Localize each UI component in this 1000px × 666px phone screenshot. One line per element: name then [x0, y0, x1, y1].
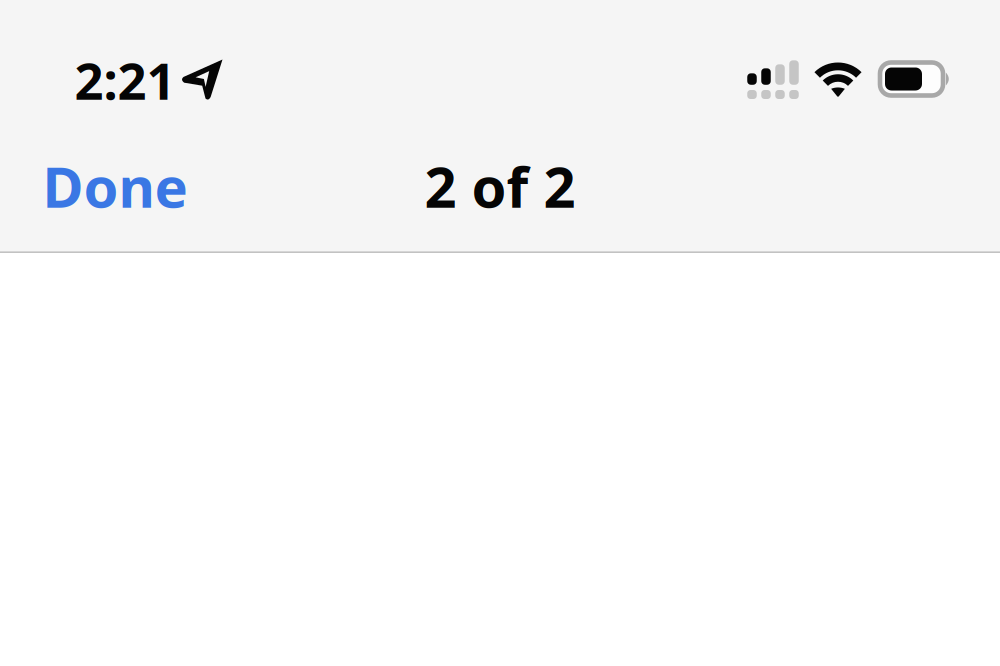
staticText: 2:21 — [74, 46, 175, 114]
staticText: Done — [42, 149, 187, 223]
staticText: 2 of 2 — [424, 149, 575, 223]
button[interactable]: Done — [20, 125, 209, 247]
